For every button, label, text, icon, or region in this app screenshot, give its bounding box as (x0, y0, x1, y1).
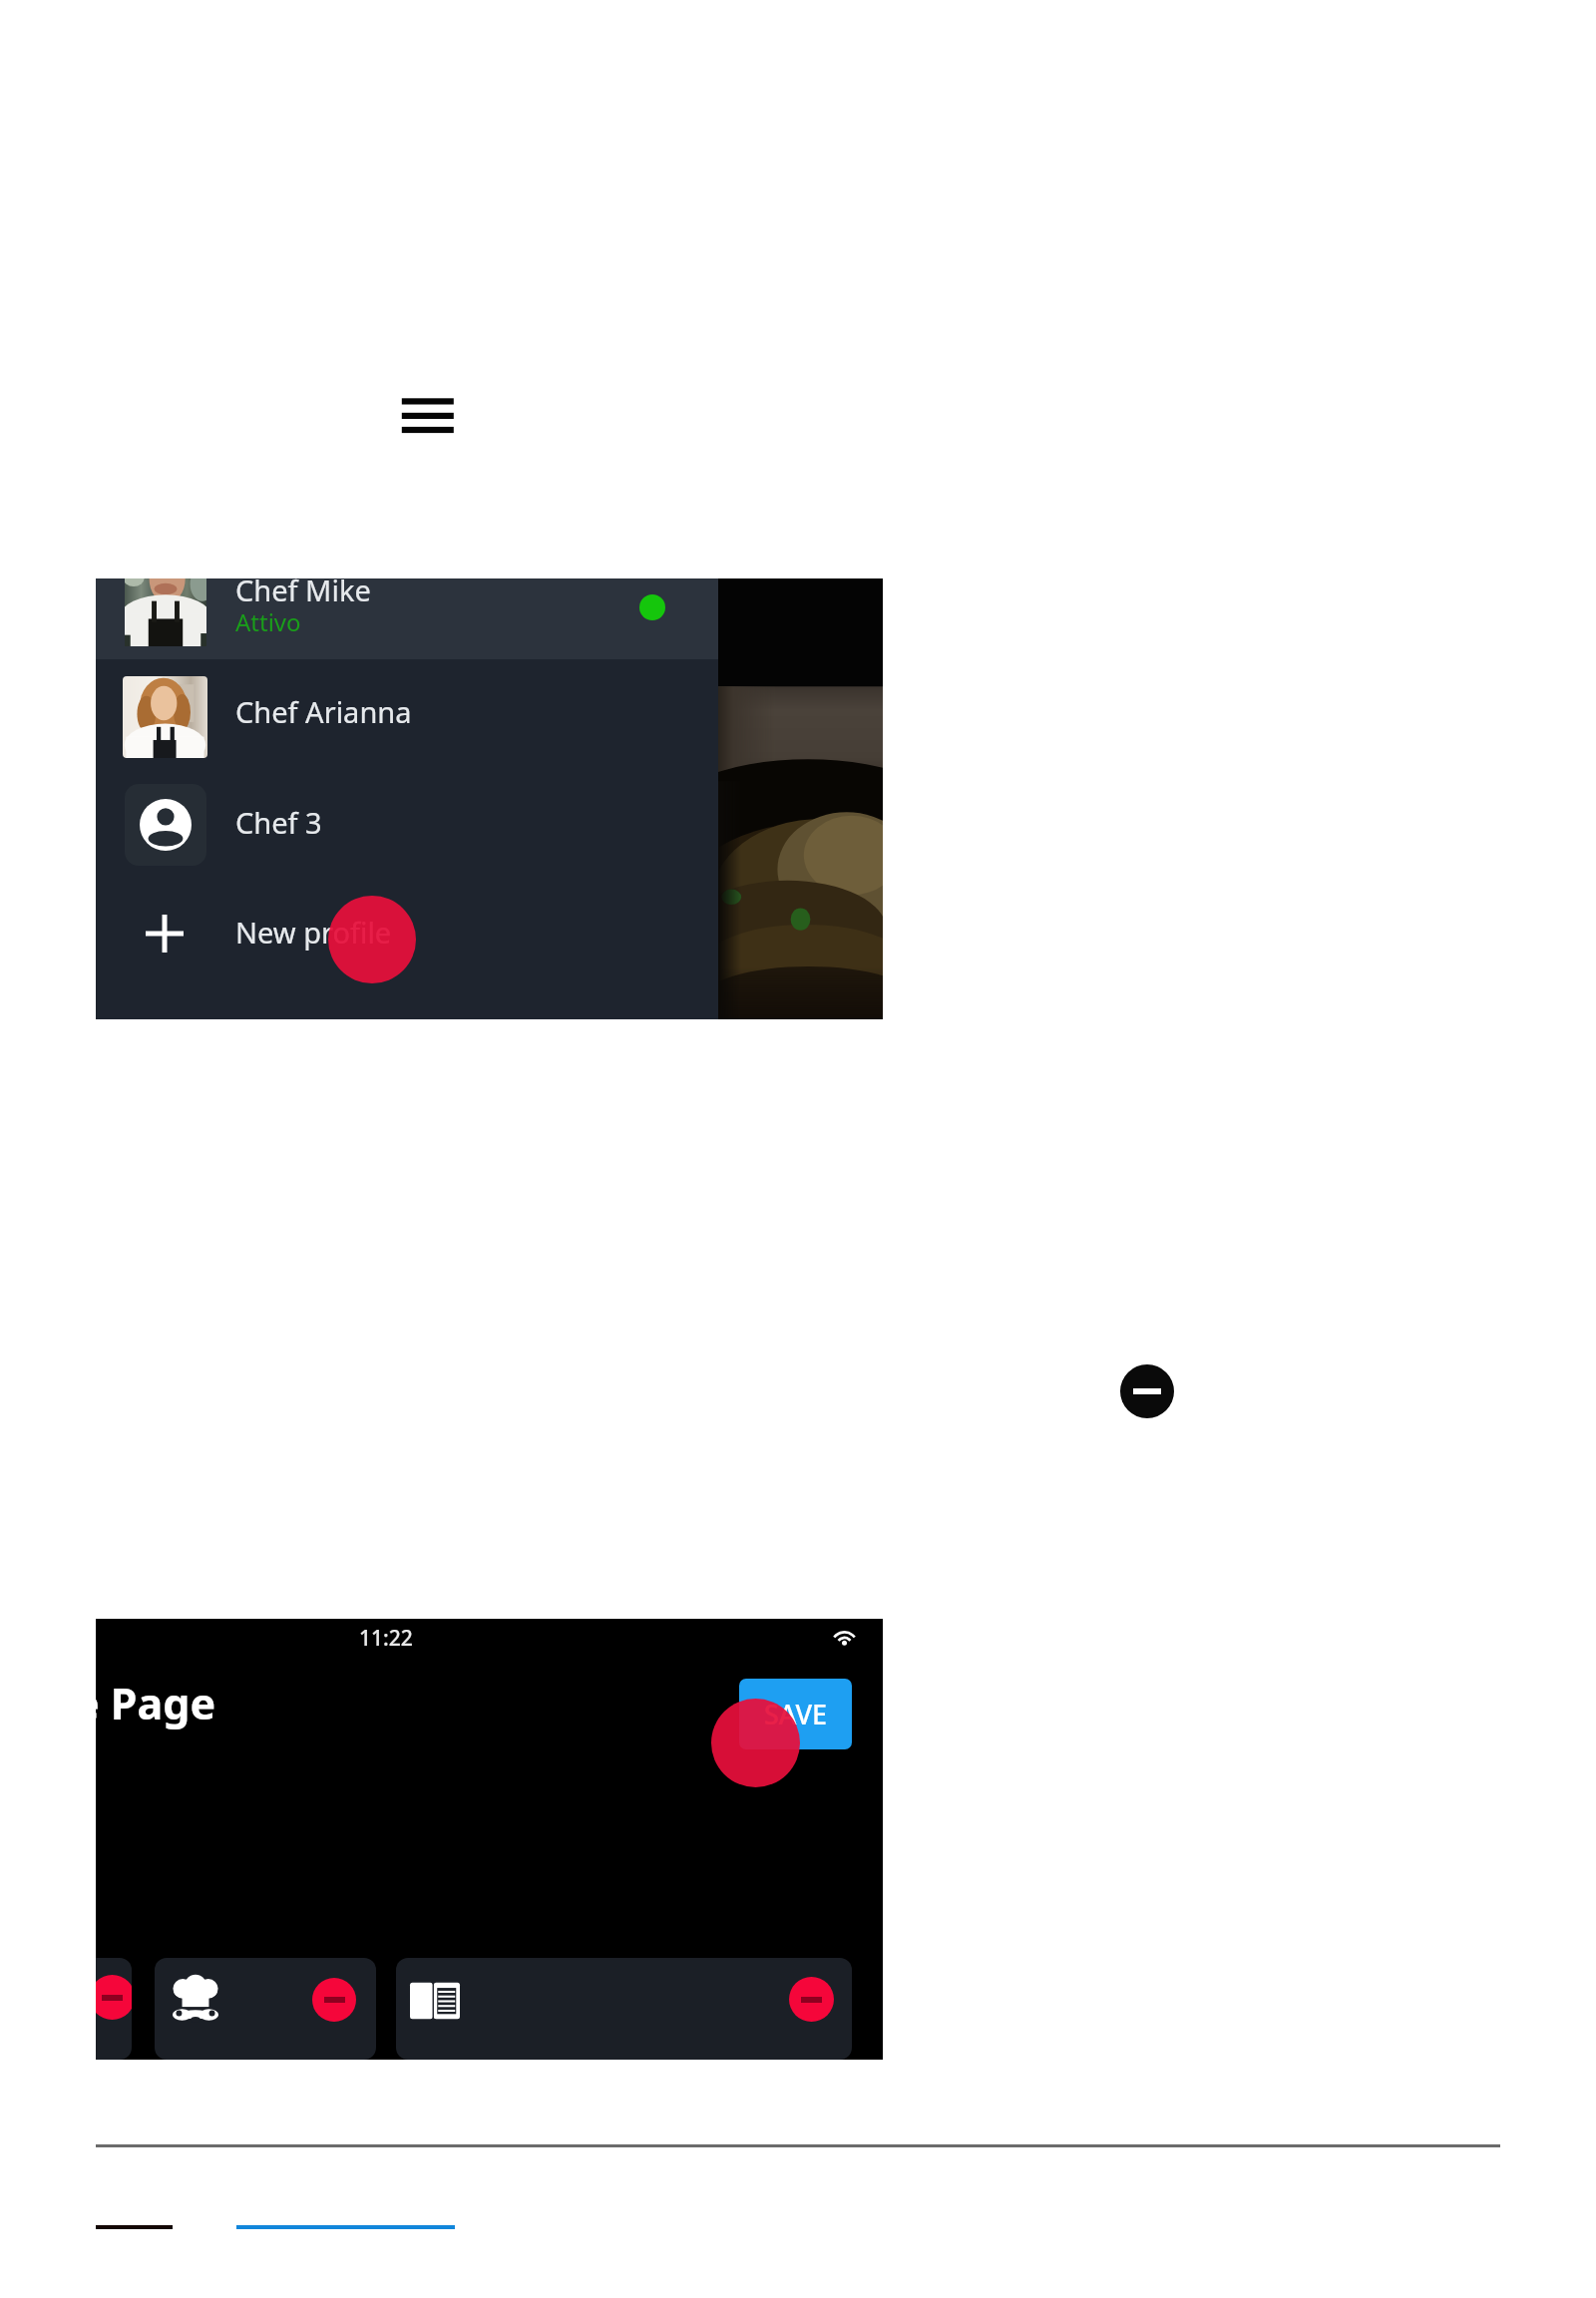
staticText: SAVE (764, 1696, 828, 1732)
staticText: e Page (96, 1674, 216, 1732)
button[interactable]: Chef Arianna (96, 659, 718, 768)
button[interactable]: Chef Mike (96, 578, 718, 659)
button[interactable]: Remove (155, 1958, 376, 2060)
staticText: Chef Mike (235, 578, 371, 609)
button[interactable]: New profile (96, 878, 718, 987)
button[interactable]: Remove (1120, 1364, 1174, 1418)
button[interactable] (96, 1958, 132, 2060)
button[interactable]: SAVE (739, 1679, 852, 1749)
staticText: Chef 3 (235, 803, 322, 842)
button[interactable]: Remove (312, 1978, 356, 2022)
button[interactable]: Menu (395, 389, 457, 439)
button[interactable]: Remove (789, 1977, 834, 2022)
button[interactable]: Chef 3 (96, 768, 718, 878)
staticText: Attivo (235, 605, 301, 638)
staticText: New profile (235, 913, 392, 952)
button[interactable]: Remove (396, 1958, 852, 2060)
staticText: 11:22 (359, 1624, 413, 1653)
staticText: Chef Arianna (235, 692, 412, 731)
